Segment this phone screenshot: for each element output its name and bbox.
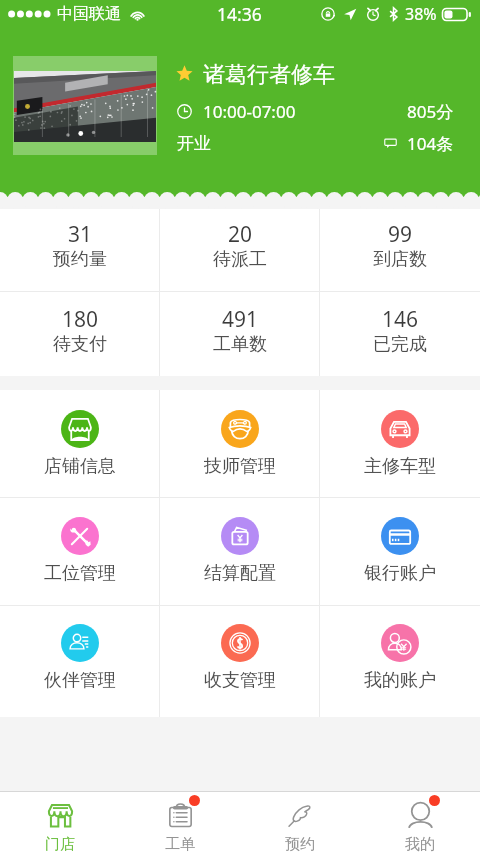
staticText: 技师管理 [204,455,276,478]
staticText: 38% [405,3,437,25]
button[interactable]: 主修车型 [320,390,480,497]
staticText: 我的 [405,835,435,854]
staticText: 银行账户 [364,562,436,585]
button[interactable]: 结算配置 [160,498,320,605]
button[interactable]: 146 [320,292,480,376]
staticText: 31 [68,220,93,249]
button[interactable]: 180 [0,292,160,376]
staticText: 我的账户 [364,669,436,692]
button[interactable]: 收支管理 [160,606,320,717]
button[interactable]: 31 [0,209,160,291]
staticText: 工单数 [213,333,267,356]
staticText: 180 [62,305,99,334]
staticText: 店铺信息 [44,455,116,478]
staticText: 待支付 [53,333,107,356]
staticText: 20 [228,220,253,249]
button[interactable]: 我的账户 [320,606,480,717]
staticText: 伙伴管理 [44,669,116,692]
staticText: 99 [388,220,413,249]
staticText: 预约量 [53,248,107,271]
button[interactable]: 工位管理 [0,498,160,605]
staticText: 10:00-07:00 [203,100,296,123]
staticText: 结算配置 [204,562,276,585]
staticText: 收支管理 [204,669,276,692]
button[interactable]: 99 [320,209,480,291]
staticText: 诸葛行者修车 [203,61,335,86]
button[interactable]: Profile [360,792,480,854]
staticText: 预约 [285,835,315,854]
button[interactable]: Stores [0,792,120,854]
staticText: 主修车型 [364,455,436,478]
button[interactable]: Appointments [240,792,360,854]
staticText: 已完成 [373,333,427,356]
button[interactable]: 店铺信息 [0,390,160,497]
button[interactable]: 银行账户 [320,498,480,605]
staticText: 工单 [165,835,195,854]
staticText: 工位管理 [44,562,116,585]
staticText: 开业 [177,133,211,154]
staticText: 805分 [407,100,454,123]
staticText: 14:36 [217,2,262,26]
staticText: 中国联通 [57,4,121,24]
button[interactable]: 20 [160,209,320,291]
staticText: 104条 [407,132,454,154]
staticText: 146 [382,305,419,334]
button[interactable]: Work orders [120,792,240,854]
staticText: 491 [222,305,259,334]
staticText: 门店 [45,835,75,854]
staticText: 到店数 [373,248,427,271]
button[interactable]: 技师管理 [160,390,320,497]
staticText: 待派工 [213,248,267,271]
button[interactable]: 伙伴管理 [0,606,160,717]
button[interactable]: 491 [160,292,320,376]
